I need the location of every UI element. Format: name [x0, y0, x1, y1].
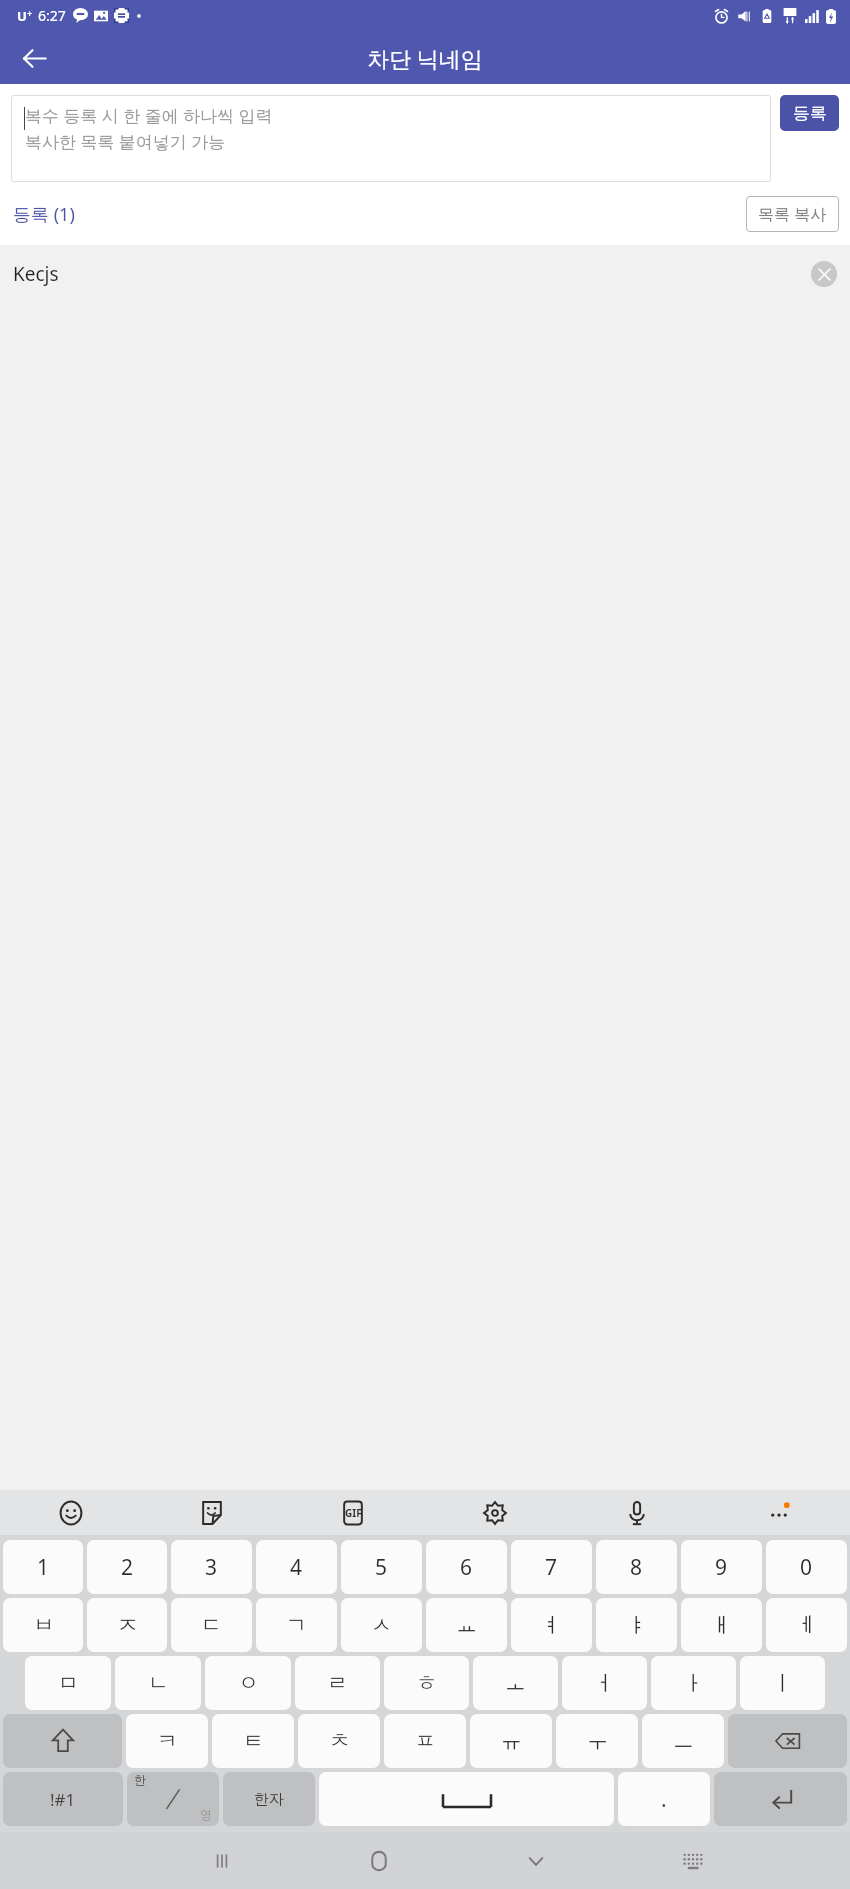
button[interactable]: ㅠ	[470, 1714, 552, 1768]
button[interactable]: ㄷ	[171, 1598, 252, 1652]
staticText: 1	[37, 1553, 50, 1582]
button[interactable]: ㅎ	[384, 1656, 469, 1710]
button[interactable]: ㅔ	[766, 1598, 847, 1652]
staticText: ㅔ	[796, 1612, 817, 1638]
staticText: ㄷ	[201, 1612, 222, 1638]
staticText: ㅐ	[711, 1612, 732, 1638]
button[interactable]: 7	[511, 1540, 592, 1594]
button[interactable]: 4	[256, 1540, 337, 1594]
button[interactable]: ㅍ	[384, 1714, 466, 1768]
button[interactable]: Switch keyboard	[614, 1832, 771, 1889]
button[interactable]: GIF	[282, 1490, 424, 1535]
button[interactable]: ㅜ	[556, 1714, 638, 1768]
staticText: 0	[800, 1553, 813, 1582]
button[interactable]: ㅅ	[341, 1598, 422, 1652]
button[interactable]: More options	[708, 1490, 850, 1535]
staticText: ㅁ	[58, 1670, 79, 1696]
staticText: ㅛ	[456, 1612, 477, 1638]
button[interactable]: ㅓ	[562, 1656, 647, 1710]
staticText: 3	[205, 1553, 218, 1582]
staticText: !#1	[50, 1788, 76, 1811]
button[interactable]: ㅐ	[681, 1598, 762, 1652]
staticText: ㅣ	[772, 1670, 793, 1696]
button[interactable]: 0	[766, 1540, 847, 1594]
staticText: 한	[134, 1772, 146, 1787]
staticText: 6	[460, 1553, 473, 1582]
staticText: Kecjs	[13, 261, 59, 287]
button[interactable]: 복수 등록 시 한 줄에 하나씩 입력	[11, 95, 771, 182]
button[interactable]: 등록 (1)	[11, 198, 77, 231]
button[interactable]: ㅏ	[651, 1656, 736, 1710]
button[interactable]: Recents	[143, 1832, 300, 1889]
staticText: ㅈ	[117, 1612, 138, 1638]
staticText: ㄱ	[286, 1612, 307, 1638]
staticText: 9	[715, 1553, 728, 1582]
button[interactable]: ㄹ	[295, 1656, 380, 1710]
button[interactable]: ㅁ	[25, 1656, 111, 1710]
button[interactable]: ㄴ	[115, 1656, 201, 1710]
staticText: ㅑ	[626, 1612, 647, 1638]
staticText: .	[661, 1785, 667, 1814]
button[interactable]: ㅂ	[3, 1598, 83, 1652]
button[interactable]: Back	[10, 34, 58, 82]
staticText: +	[27, 7, 33, 19]
staticText: 영	[200, 1807, 212, 1822]
button[interactable]: !#1	[3, 1772, 123, 1826]
button[interactable]: ㅌ	[212, 1714, 294, 1768]
button[interactable]: Shift	[3, 1714, 122, 1768]
button[interactable]: 3	[171, 1540, 252, 1594]
button[interactable]: ㅈ	[87, 1598, 167, 1652]
button[interactable]: Korean English toggle	[127, 1772, 219, 1826]
button[interactable]: ㅕ	[511, 1598, 592, 1652]
button[interactable]: Emoji	[0, 1490, 141, 1535]
button[interactable]: Stickers	[141, 1490, 282, 1535]
button[interactable]: Keyboard settings	[424, 1490, 566, 1535]
staticText: ㄹ	[327, 1670, 348, 1696]
staticText: ㅕ	[541, 1612, 562, 1638]
button[interactable]: 목록 복사	[746, 196, 839, 232]
button[interactable]: ㅇ	[205, 1656, 291, 1710]
staticText: ㅊ	[329, 1728, 350, 1754]
button[interactable]: Hide keyboard	[457, 1832, 614, 1889]
button[interactable]: Remove	[811, 261, 837, 287]
button[interactable]: Kecjs	[0, 245, 850, 303]
button[interactable]: 한자	[223, 1772, 315, 1826]
staticText: ㅡ	[673, 1728, 694, 1754]
staticText: 4	[290, 1553, 303, 1582]
staticText: 6:27	[38, 6, 66, 25]
button[interactable]: ㅊ	[298, 1714, 380, 1768]
button[interactable]: Voice input	[566, 1490, 708, 1535]
staticText: ㅓ	[594, 1670, 615, 1696]
button[interactable]: 8	[596, 1540, 677, 1594]
staticText: 8	[630, 1553, 643, 1582]
button[interactable]: ㅋ	[126, 1714, 208, 1768]
button[interactable]: Backspace	[728, 1714, 847, 1768]
staticText: 한자	[254, 1790, 284, 1809]
button[interactable]: 2	[87, 1540, 167, 1594]
button[interactable]: Home	[300, 1832, 457, 1889]
staticText: ㅗ	[505, 1670, 526, 1696]
button[interactable]: ㅛ	[426, 1598, 507, 1652]
button[interactable]: ㄱ	[256, 1598, 337, 1652]
button[interactable]: Enter	[714, 1772, 847, 1826]
button[interactable]: ㅡ	[642, 1714, 724, 1768]
staticText: ㄴ	[148, 1670, 169, 1696]
staticText: 5	[375, 1553, 388, 1582]
button[interactable]: ㅣ	[740, 1656, 825, 1710]
staticText: ㅏ	[683, 1670, 704, 1696]
button[interactable]: 9	[681, 1540, 762, 1594]
staticText: ㅅ	[371, 1612, 392, 1638]
button[interactable]: 1	[3, 1540, 83, 1594]
button[interactable]: Space	[319, 1772, 614, 1826]
staticText: U	[17, 7, 27, 25]
staticText: ㅜ	[587, 1728, 608, 1754]
button[interactable]: 5	[341, 1540, 422, 1594]
staticText: 2	[121, 1553, 134, 1582]
staticText: ㅌ	[243, 1728, 264, 1754]
button[interactable]: 6	[426, 1540, 507, 1594]
button[interactable]: 등록	[780, 95, 839, 131]
button[interactable]: ㅗ	[473, 1656, 558, 1710]
button[interactable]: ㅑ	[596, 1598, 677, 1652]
button[interactable]: .	[618, 1772, 710, 1826]
staticText: 7	[545, 1553, 558, 1582]
